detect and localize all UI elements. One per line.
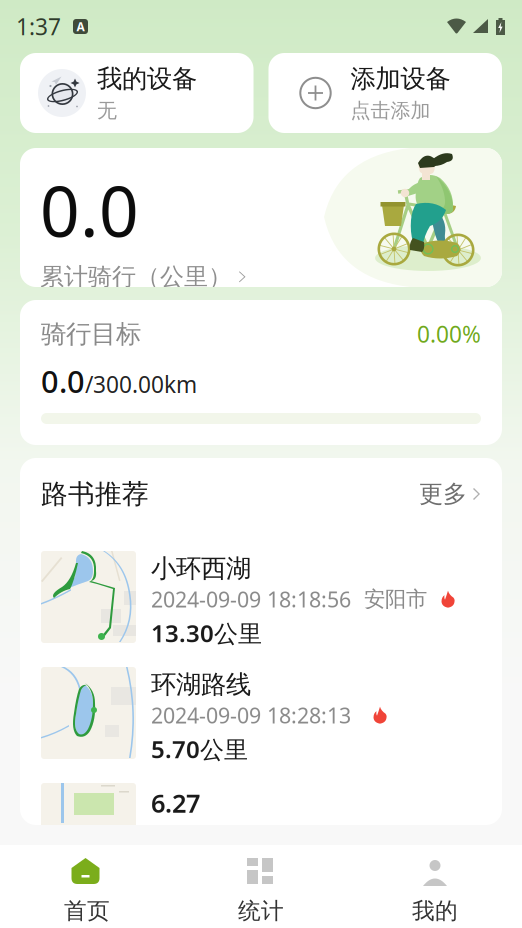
staticText: 13.30公里	[151, 617, 262, 649]
staticText: 5.70公里	[151, 733, 248, 765]
button[interactable]: 小环西湖	[20, 530, 502, 646]
button[interactable]: 我的设备	[20, 53, 253, 133]
staticText: 0.0	[40, 164, 139, 256]
staticText: 添加设备	[350, 63, 450, 94]
staticText: 我的	[412, 897, 458, 925]
staticText: 1:37	[16, 11, 61, 41]
staticText: 2024-09-09 18:18:56	[151, 585, 351, 613]
button[interactable]: 首页	[0, 845, 174, 928]
staticText: 2024-09-09 18:28:13	[151, 701, 351, 729]
staticText: 小环西湖	[151, 553, 251, 584]
button[interactable]: 路书推荐	[20, 458, 502, 530]
staticText: 累计骑行（公里）	[40, 262, 232, 292]
staticText: 6.27	[151, 786, 200, 820]
button[interactable]: 统计	[174, 845, 348, 928]
staticText: 我的设备	[97, 63, 197, 94]
button[interactable]: 环湖路线	[20, 646, 502, 762]
staticText: 骑行目标	[41, 318, 141, 349]
staticText: 首页	[64, 897, 110, 925]
staticText: /300.00km	[85, 369, 197, 399]
staticText: 环湖路线	[151, 669, 251, 700]
button[interactable]: 0.0	[20, 148, 502, 287]
staticText: A	[76, 18, 84, 34]
staticText: 统计	[238, 897, 284, 925]
staticText: 无	[97, 98, 117, 123]
button[interactable]: 我的	[348, 845, 522, 928]
staticText: 点击添加	[350, 98, 430, 123]
staticText: 0.00%	[417, 319, 481, 349]
staticText: 更多	[419, 479, 467, 509]
staticText: 路书推荐	[41, 478, 149, 510]
button[interactable]: 添加设备	[268, 53, 502, 133]
staticText: 0.0	[41, 361, 85, 401]
staticText: 安阳市	[364, 586, 427, 612]
